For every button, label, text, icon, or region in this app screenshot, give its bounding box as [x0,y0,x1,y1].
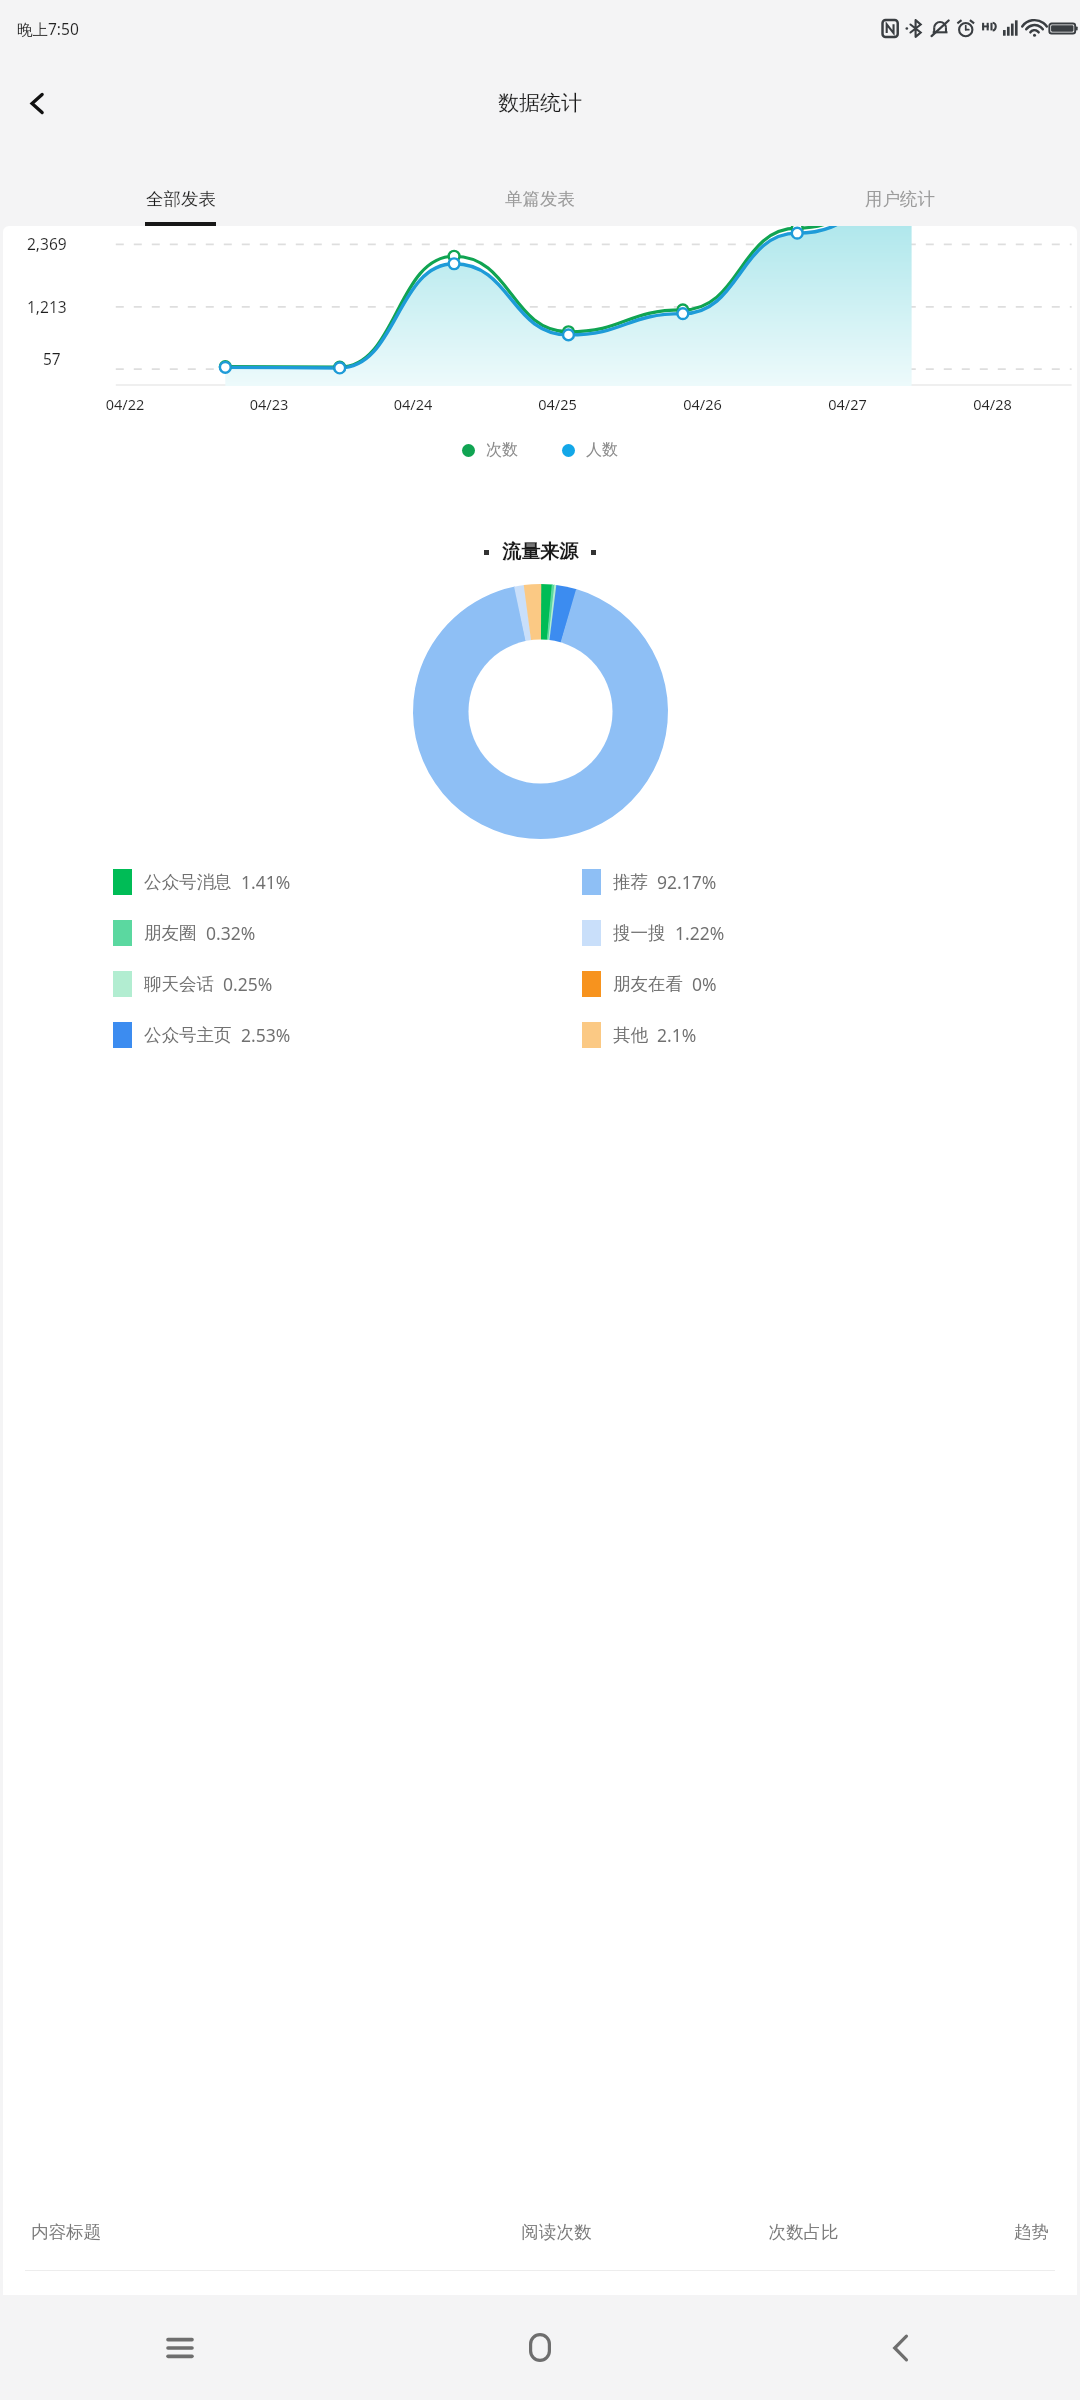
button[interactable]: 聊天会话 [113,971,582,997]
staticText: 04/25 [485,394,630,414]
staticText: 0.25% [223,972,273,996]
staticText: 92.17% [657,870,717,894]
button[interactable]: Home [360,2295,720,2400]
staticText: 晚上7:50 [17,18,79,39]
staticText: 趋势 [921,2221,1049,2243]
staticText: 流量来源 [502,540,578,564]
button[interactable]: 朋友圈 [113,920,582,946]
button[interactable]: 其他 [582,1022,1051,1048]
staticText: 全部发表 [146,188,216,210]
button[interactable]: Recent apps [0,2295,360,2400]
staticText: 04/26 [630,394,775,414]
staticText: 0.32% [206,921,256,945]
staticText: 朋友在看 [613,973,683,995]
staticText: 聊天会话 [144,973,214,995]
staticText: 04/24 [341,394,485,414]
staticText: 搜一搜 [613,922,666,944]
button[interactable]: 人数 [562,440,618,460]
staticText: 公众号主页 [144,1024,232,1046]
staticText: 次数占比 [686,2221,921,2243]
button[interactable]: 推荐 [582,869,1051,895]
staticText: 04/27 [775,394,920,414]
staticText: 1,213 [27,296,67,317]
staticText: 数据统计 [498,90,582,116]
button[interactable]: 单篇发表 [360,149,720,226]
staticText: 1.22% [675,921,725,945]
staticText: 朋友圈 [144,922,197,944]
staticText: 2.1% [657,1023,697,1047]
staticText: 人数 [586,440,618,460]
staticText: 0% [692,972,717,996]
staticText: 2,369 [27,233,67,254]
staticText: 1.41% [241,870,291,894]
button[interactable]: 公众号主页 [113,1022,582,1048]
staticText: 2.53% [241,1023,291,1047]
button[interactable]: 全部发表 [0,149,360,226]
staticText: 阅读次数 [427,2221,686,2243]
staticText: 公众号消息 [144,871,232,893]
staticText: 内容标题 [31,2221,427,2243]
staticText: 04/22 [53,394,197,414]
staticText: 次数 [486,440,518,460]
button[interactable]: 公众号消息 [113,869,582,895]
staticText: 04/28 [920,394,1065,414]
button[interactable]: 朋友在看 [582,971,1051,997]
staticText: 04/23 [197,394,341,414]
button[interactable]: Back [10,76,64,130]
staticText: 推荐 [613,871,648,893]
button[interactable]: 用户统计 [720,149,1080,226]
staticText: 57 [43,348,61,369]
button[interactable]: Back [720,2295,1080,2400]
button[interactable]: 搜一搜 [582,920,1051,946]
button[interactable]: 次数 [462,440,518,460]
staticText: 用户统计 [865,188,935,210]
staticText: 单篇发表 [505,188,575,210]
staticText: 其他 [613,1024,648,1046]
